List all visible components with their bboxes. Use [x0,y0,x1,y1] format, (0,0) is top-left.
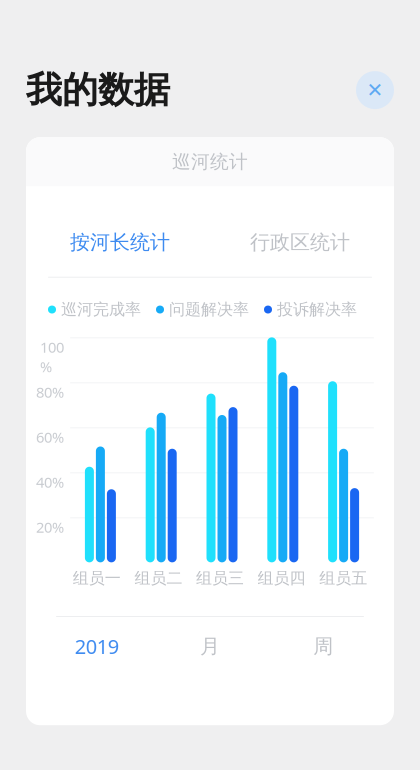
button[interactable]: 周 [267,622,380,671]
staticText: 巡河完成率 [61,300,141,319]
staticText: 按河长统计 [70,230,170,255]
staticText: 投诉解决率 [277,300,357,319]
button[interactable]: 行政区统计 [210,220,390,265]
button[interactable]: 2019 [40,621,153,672]
staticText: 组员二 [134,568,182,588]
staticText: 周 [313,634,333,659]
staticText: 组员一 [73,568,121,588]
staticText: 问题解决率 [169,300,249,319]
button[interactable]: 月 [153,622,267,671]
button[interactable]: Close [356,71,394,109]
staticText: ✕ [366,79,383,101]
staticText: 60% [36,427,64,447]
staticText: 月 [200,634,220,659]
staticText: 80% [36,382,64,402]
staticText: 组员四 [258,568,306,588]
button[interactable]: 按河长统计 [30,220,210,265]
staticText: 2019 [75,633,119,660]
staticText: 20% [36,517,64,537]
staticText: 巡河统计 [172,150,248,173]
staticText: 40% [36,472,64,492]
staticText: 组员五 [319,568,367,588]
staticText: 我的数据 [26,68,170,112]
staticText: 组员三 [196,568,244,588]
staticText: 100% [40,337,64,376]
staticText: 行政区统计 [250,230,350,255]
